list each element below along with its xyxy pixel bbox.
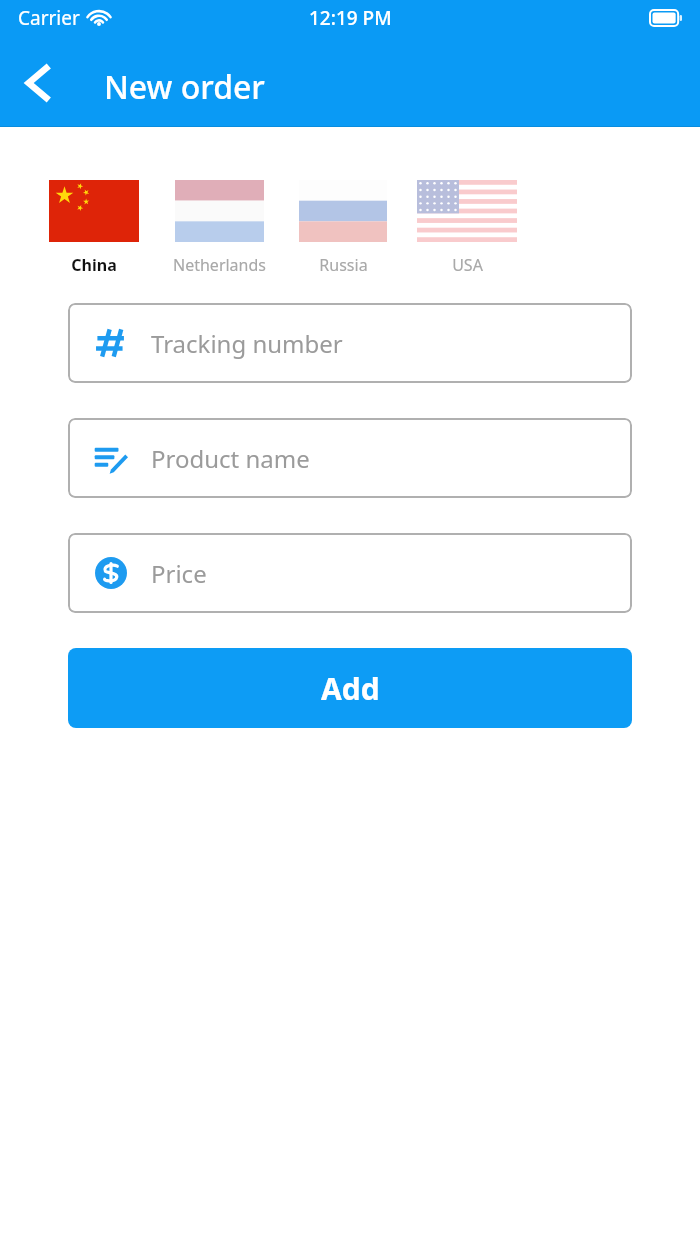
button[interactable]: Add	[68, 648, 632, 728]
staticText: Product name	[151, 442, 310, 475]
button[interactable]: Netherlands	[173, 180, 266, 276]
staticText: Add	[321, 668, 380, 709]
button[interactable]: Back	[8, 53, 68, 113]
staticText: China	[71, 254, 117, 276]
button[interactable]: USA	[417, 180, 517, 276]
button[interactable]: China	[49, 180, 139, 276]
staticText: Carrier	[18, 5, 80, 31]
button[interactable]: Tracking number	[68, 303, 632, 383]
staticText: Netherlands	[173, 254, 266, 276]
button[interactable]: Russia	[299, 180, 387, 276]
staticText: Tracking number	[151, 327, 343, 360]
staticText: Russia	[319, 254, 368, 276]
staticText: New order	[104, 65, 265, 109]
staticText: 12:19 PM	[309, 5, 392, 31]
button[interactable]: Price	[68, 533, 632, 613]
staticText: Price	[151, 557, 207, 590]
staticText: USA	[452, 254, 483, 276]
button[interactable]: Product name	[68, 418, 632, 498]
